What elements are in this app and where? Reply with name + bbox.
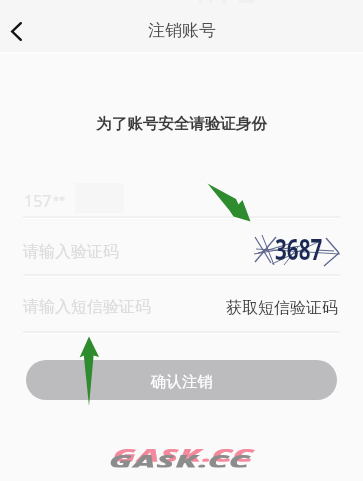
staticText: 注销账号 [148,20,216,41]
button[interactable]: Refresh captcha [254,234,342,266]
button[interactable]: 确认注销 [26,360,337,400]
staticText: GASK.CC [113,443,255,462]
staticText: 为了账号安全请验证身份 [0,114,363,134]
staticText: 请输入验证码 [23,242,119,262]
staticText: 3687 [275,230,323,262]
staticText: GASK.CC [109,449,251,467]
staticText: 157 [24,190,52,212]
button[interactable]: Back [0,12,33,50]
staticText: 获取短信验证码 [226,298,338,318]
button[interactable]: 获取短信验证码 [222,292,342,324]
staticText: 请输入短信验证码 [23,297,151,317]
staticText: 确认注销 [151,372,213,392]
staticText: ** [53,192,66,207]
